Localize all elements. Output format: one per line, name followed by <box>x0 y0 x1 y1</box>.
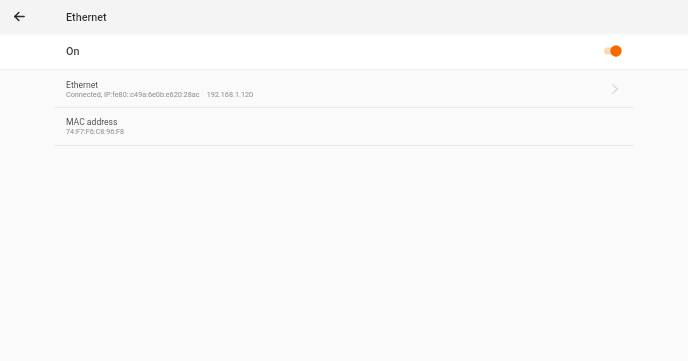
staticText: Connected, IP:fe80::c49a:6e0b:e620:28ac … <box>66 90 254 98</box>
staticText: MAC address <box>66 117 118 127</box>
button[interactable]: On <box>0 33 688 69</box>
staticText: 74:F7:F6:C8:96:F8 <box>66 127 125 135</box>
staticText: Ethernet <box>66 80 99 90</box>
button[interactable]: Back <box>3 0 35 32</box>
button[interactable]: MAC address <box>0 108 688 145</box>
button[interactable]: Ethernet <box>0 71 688 107</box>
staticText: Ethernet <box>66 11 107 24</box>
staticText: On <box>66 45 80 58</box>
button[interactable]: Ethernet on <box>604 42 628 60</box>
